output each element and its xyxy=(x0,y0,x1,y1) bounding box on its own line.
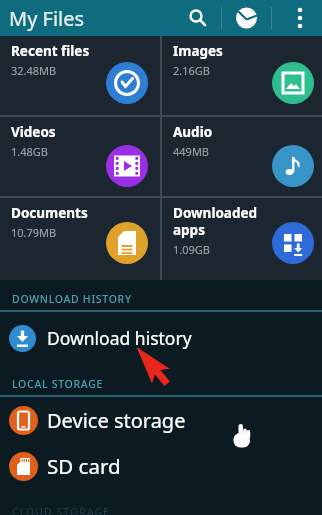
staticText: Documents xyxy=(11,204,88,222)
staticText: CLOUD STORAGE xyxy=(12,505,110,515)
staticText: 1.48GB xyxy=(11,144,48,159)
button[interactable] xyxy=(222,0,271,36)
staticText: My Files xyxy=(9,5,85,32)
staticText: Videos xyxy=(11,123,56,141)
staticText: 10.79MB xyxy=(11,225,57,240)
button[interactable] xyxy=(272,0,322,36)
staticText: 2.16GB xyxy=(173,63,210,78)
button[interactable]: Recent files xyxy=(0,36,160,115)
button[interactable] xyxy=(181,0,221,36)
button[interactable]: Device storage xyxy=(0,397,322,443)
staticText: Device storage xyxy=(47,407,186,434)
staticText: Downloaded apps xyxy=(173,204,258,239)
button[interactable]: Download history xyxy=(0,312,322,364)
staticText: LOCAL STORAGE xyxy=(12,377,104,391)
staticText: 32.48MB xyxy=(11,63,57,78)
staticText: Download history xyxy=(47,326,192,350)
staticText: Images xyxy=(173,42,223,60)
staticText: 1.09GB xyxy=(173,242,210,257)
button[interactable]: SD card xyxy=(0,443,322,489)
staticText: DOWNLOAD HISTORY xyxy=(12,292,132,306)
button[interactable]: Audio xyxy=(162,117,322,196)
button[interactable]: Downloaded apps xyxy=(162,198,322,280)
button[interactable]: Videos xyxy=(0,117,160,196)
staticText: Recent files xyxy=(11,42,90,60)
button[interactable]: Images xyxy=(162,36,322,115)
staticText: SD card xyxy=(47,452,121,480)
staticText: Audio xyxy=(173,123,213,141)
staticText: 449MB xyxy=(173,144,210,159)
button[interactable]: Documents xyxy=(0,198,160,280)
